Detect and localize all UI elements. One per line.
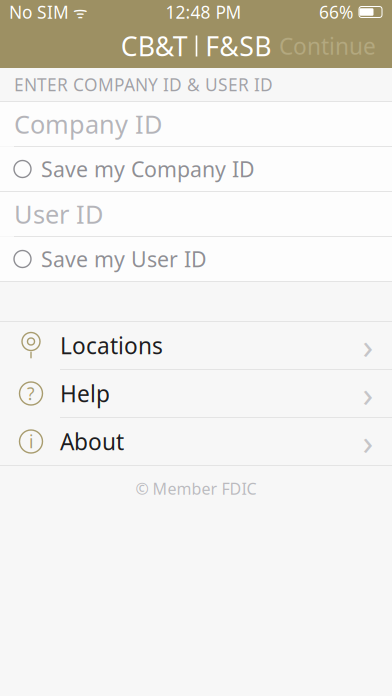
staticText: ? [27,382,35,405]
staticText: › [362,370,373,416]
staticText: i [29,430,33,453]
staticText: CB&T [121,28,188,64]
staticText: User ID [14,197,103,231]
staticText: F&SB [205,28,271,64]
button[interactable]: Company ID [0,102,392,146]
staticText: Continue [279,31,376,61]
staticText: 66% [319,0,353,23]
staticText: No SIM [9,0,69,23]
staticText: ᯤ [69,1,88,23]
staticText: © Member FDIC [135,478,256,499]
staticText: ENTER COMPANY ID & USER ID [14,73,273,96]
staticText: › [362,418,373,464]
staticText: 12:48 PM [165,0,241,23]
button[interactable]: Save my Company ID [0,147,392,191]
staticText: Save my User ID [41,245,207,273]
button[interactable]: i [0,418,392,465]
staticText: Save my Company ID [41,155,255,183]
button[interactable]: ? [0,370,392,417]
button[interactable]: Locations [0,322,392,369]
staticText: About [60,426,124,456]
staticText: Company ID [14,107,162,141]
button[interactable]: Save my User ID [0,237,392,281]
button[interactable]: Continue [268,25,387,67]
staticText: › [362,322,373,368]
button[interactable]: User ID [0,192,392,236]
staticText: Help [60,378,110,408]
staticText: Locations [60,330,163,360]
